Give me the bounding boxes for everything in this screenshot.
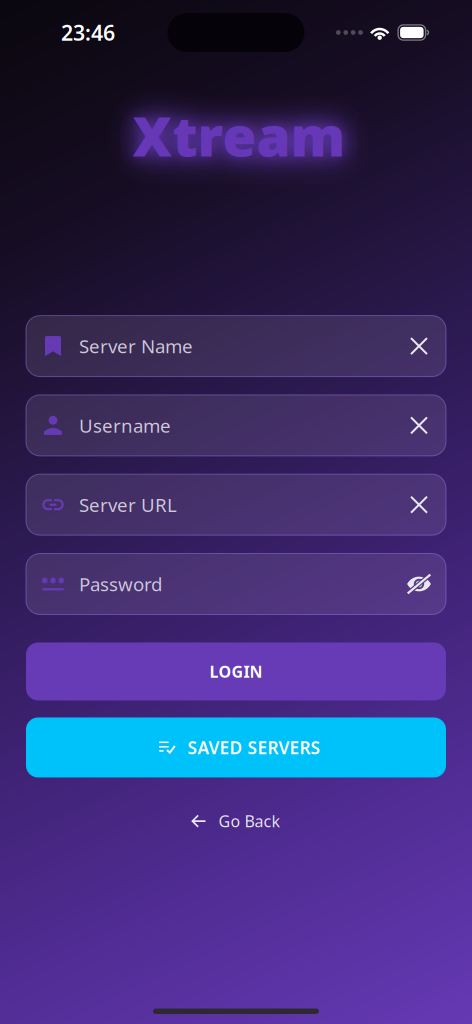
button[interactable]: Show password	[400, 562, 438, 606]
staticText: 23:46	[61, 18, 115, 47]
staticText: Server URL	[79, 492, 177, 517]
button[interactable]: SAVED SERVERS	[26, 717, 446, 777]
staticText: Username	[79, 413, 171, 438]
staticText: SAVED SERVERS	[187, 736, 320, 759]
staticText: LOGIN	[209, 661, 262, 682]
button[interactable]: Clear Server URL	[400, 483, 438, 527]
staticText: Server Name	[79, 334, 193, 358]
button[interactable]: Clear Username	[400, 403, 438, 447]
button[interactable]: LOGIN	[26, 642, 446, 700]
staticText: Go Back	[218, 810, 280, 832]
button[interactable]: Go Back	[177, 800, 294, 842]
staticText: Password	[79, 572, 162, 596]
staticText: Xtream	[132, 99, 345, 172]
button[interactable]: Clear Server Name	[400, 324, 438, 368]
